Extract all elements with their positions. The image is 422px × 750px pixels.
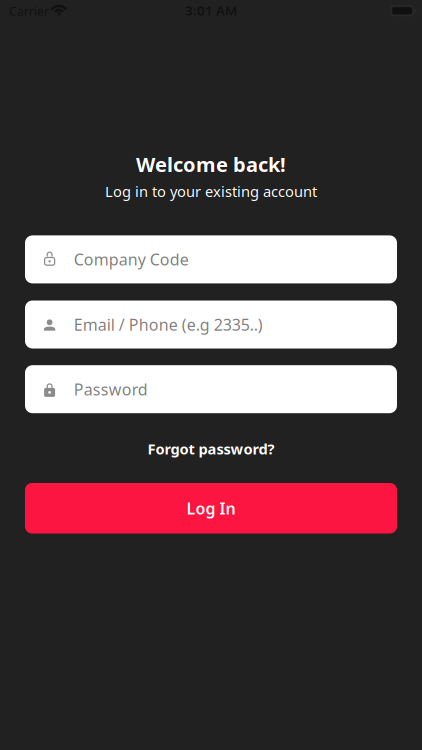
button[interactable]: Forgot password? xyxy=(141,436,280,461)
staticText: Password xyxy=(74,379,148,400)
staticText: Email / Phone (e.g 2335..) xyxy=(74,314,263,335)
button[interactable]: Password xyxy=(25,365,397,413)
staticText: Carrier xyxy=(9,3,49,19)
staticText: Log In xyxy=(186,498,235,519)
button[interactable]: Company Code xyxy=(25,235,397,283)
staticText: Forgot password? xyxy=(147,439,274,458)
staticText: 3:01 AM xyxy=(185,1,237,19)
button[interactable]: Log In xyxy=(25,483,397,533)
button[interactable]: Email / Phone (e.g 2335..) xyxy=(25,300,397,348)
staticText: Company Code xyxy=(74,249,189,270)
staticText: Welcome back! xyxy=(136,151,286,178)
staticText: Log in to your existing account xyxy=(105,182,317,201)
